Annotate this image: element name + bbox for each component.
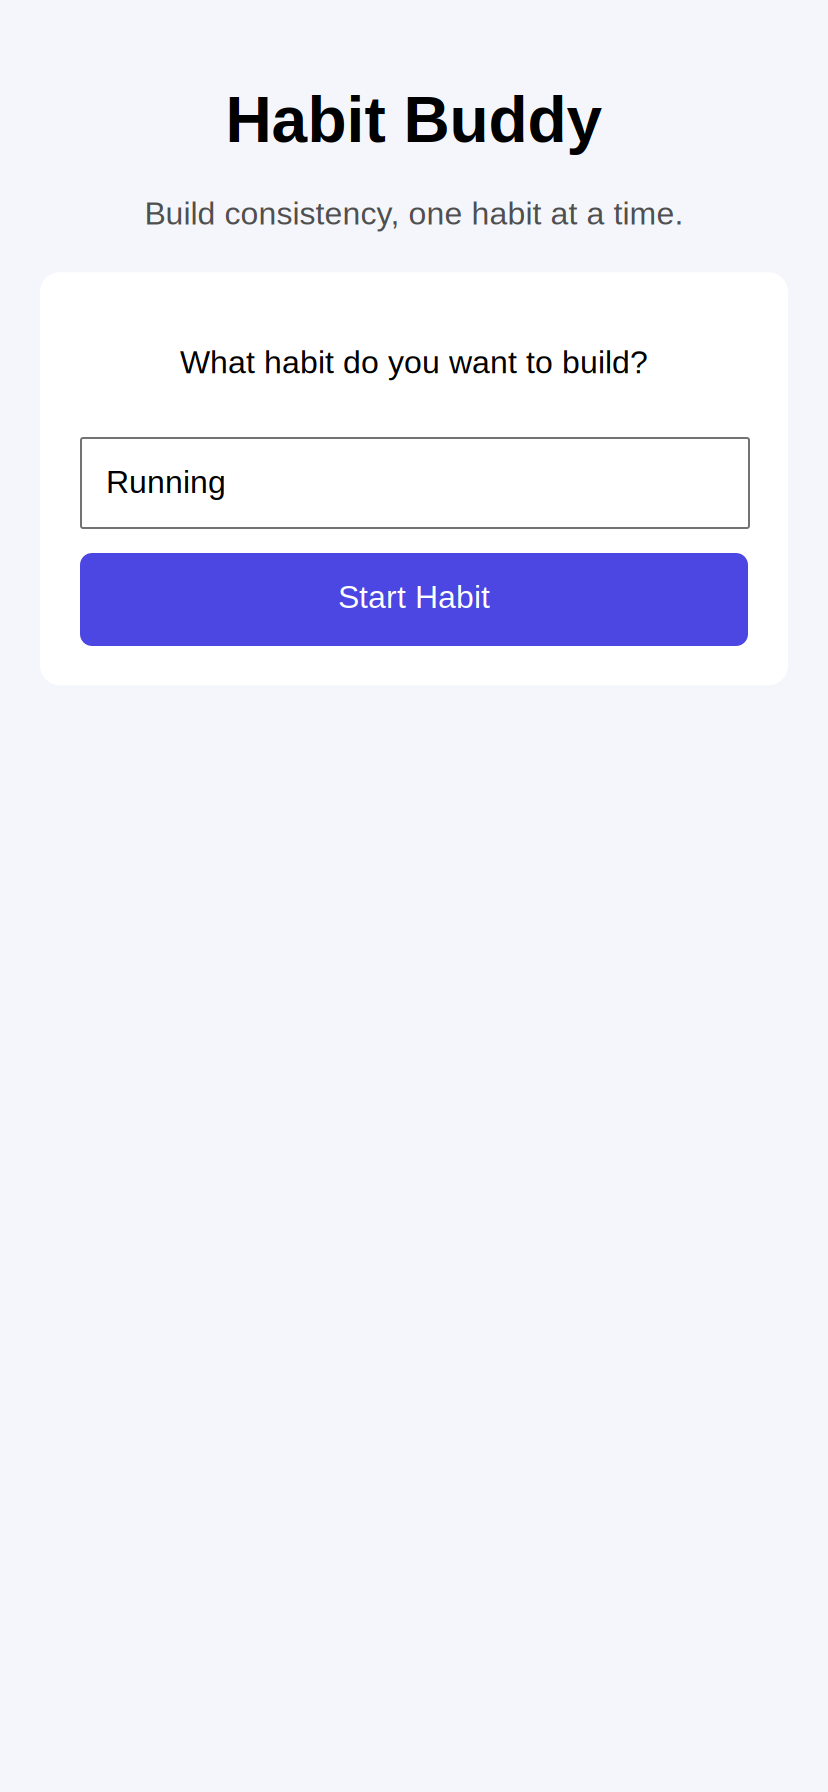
button[interactable]: Start Habit	[80, 553, 748, 646]
staticText: Habit Buddy	[225, 84, 602, 155]
staticText: Running	[106, 464, 226, 500]
staticText: Build consistency, one habit at a time.	[144, 195, 683, 231]
staticText: What habit do you want to build?	[180, 344, 648, 380]
staticText: Start Habit	[338, 579, 490, 615]
button[interactable]: Running	[79, 438, 749, 528]
